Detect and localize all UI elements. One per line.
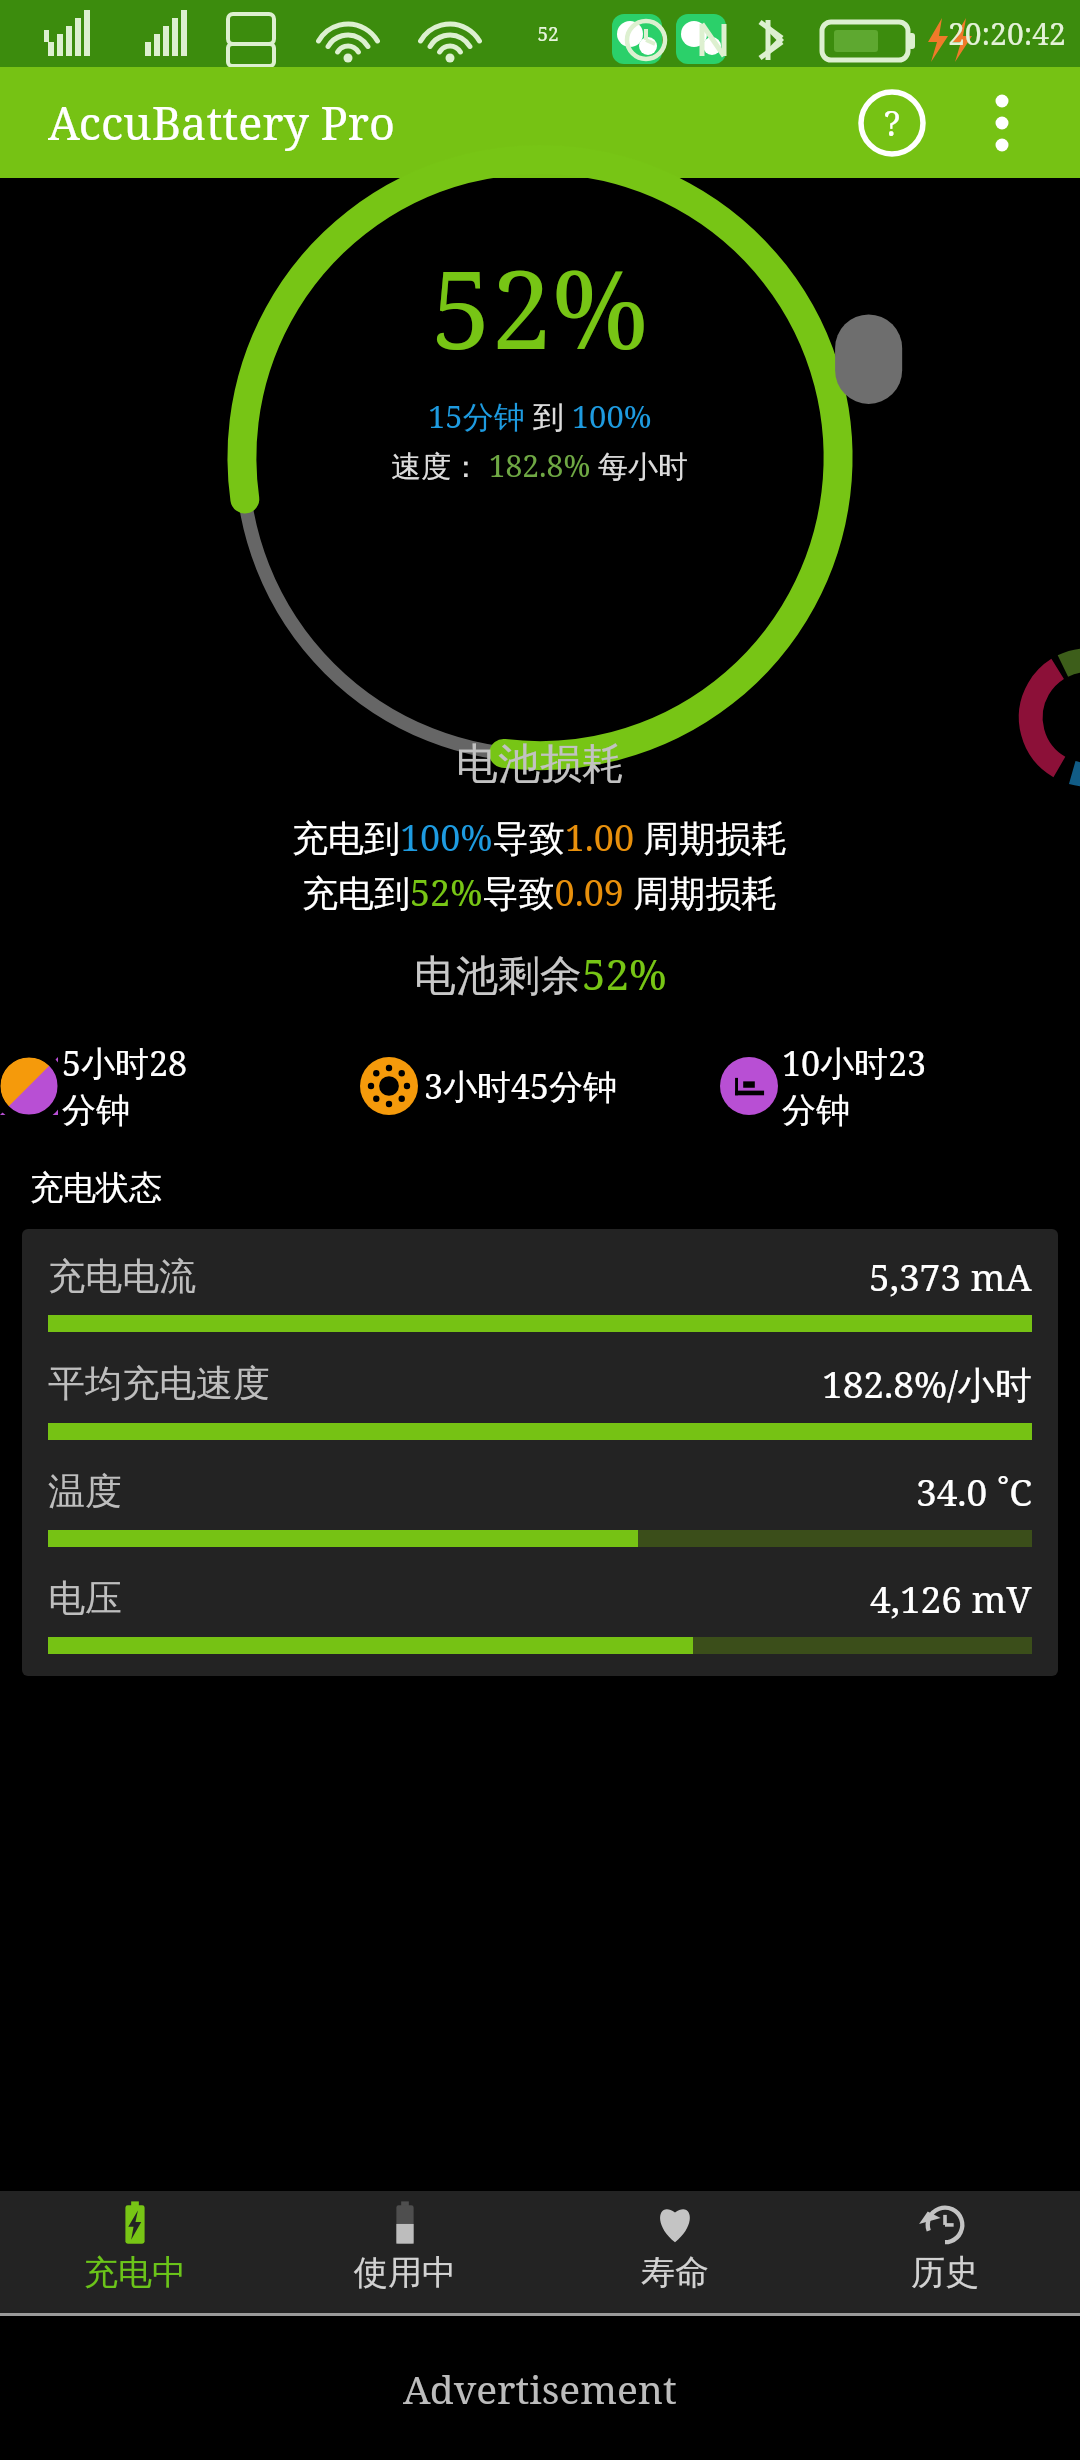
staticText: 4,126 mV [870,1573,1032,1623]
button[interactable]: 使用中 [270,2191,540,2313]
staticText: 充电中 [84,2251,186,2294]
button[interactable]: 充电中 [0,2191,270,2313]
button[interactable]: 电压 [48,1573,1032,1654]
staticText: 5小时28 分钟 [62,1040,188,1132]
staticText: 充电电流 [48,1253,196,1300]
staticText: 温度 [48,1468,122,1515]
staticText: Advertisement [403,2362,677,2415]
staticText: 速度： 182.8% 每小时 [391,445,689,486]
staticText: 平均充电速度 [48,1360,270,1407]
staticText: 3小时45分钟 [424,1063,618,1109]
staticText: 电池损耗 [456,738,624,791]
button[interactable]: 温度 [48,1466,1032,1547]
staticText: 10小时23 分钟 [782,1040,927,1132]
staticText: 34.0 ˚C [916,1466,1032,1516]
staticText: 充电到100%导致1.00 周期损耗 [292,813,788,862]
staticText: 182.8%/小时 [822,1358,1032,1409]
staticText: 52% [431,234,649,381]
staticText: 15分钟 到 100% [428,395,652,437]
button[interactable]: 历史 [810,2191,1080,2313]
staticText: 电压 [48,1575,122,1622]
staticText: 20:20:42 [948,13,1066,54]
staticText: 5,373 mA [869,1251,1032,1301]
staticText: ? [884,100,901,146]
button[interactable]: Help [844,75,940,171]
button[interactable]: More options [960,81,1044,165]
staticText: 52 [537,21,559,47]
staticText: 历史 [911,2251,979,2294]
staticText: 电池剩余52% [414,945,667,1002]
button[interactable]: 寿命 [540,2191,810,2313]
staticText: AccuBattery Pro [48,92,395,153]
staticText: 充电到52%导致0.09 周期损耗 [302,868,778,917]
button[interactable]: 充电电流 [48,1251,1032,1332]
staticText: 使用中 [354,2251,456,2294]
staticText: 寿命 [641,2251,709,2294]
button[interactable]: 平均充电速度 [48,1358,1032,1440]
staticText: 充电状态 [30,1167,162,1209]
